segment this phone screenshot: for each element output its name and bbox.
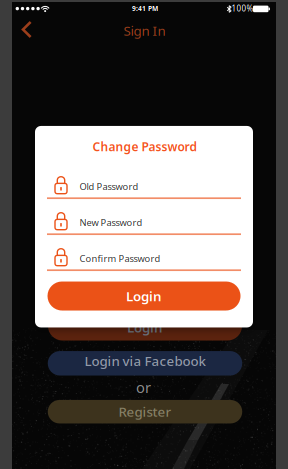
staticText: Login via Facebook: [84, 352, 205, 370]
button[interactable]: Register: [48, 400, 242, 423]
button[interactable]: Confirm Password: [47, 244, 241, 272]
button[interactable]: Login: [47, 281, 240, 310]
button[interactable]: Old Password: [47, 172, 241, 200]
staticText: 100%: [231, 3, 253, 14]
staticText: Old Password: [79, 180, 138, 193]
button[interactable]: Back: [11, 15, 41, 44]
button[interactable]: New Password: [47, 208, 241, 236]
staticText: 9:41 PM: [132, 4, 158, 13]
staticText: Change Password: [92, 138, 197, 154]
staticText: New Password: [79, 216, 142, 229]
staticText: Register: [118, 403, 171, 420]
button[interactable]: Login: [48, 311, 242, 340]
staticText: Confirm Password: [79, 252, 160, 265]
staticText: Login: [126, 287, 162, 305]
button[interactable]: Login via Facebook: [48, 351, 242, 376]
staticText: Sign In: [123, 22, 165, 39]
staticText: or: [136, 378, 151, 397]
staticText: Login: [127, 318, 163, 336]
